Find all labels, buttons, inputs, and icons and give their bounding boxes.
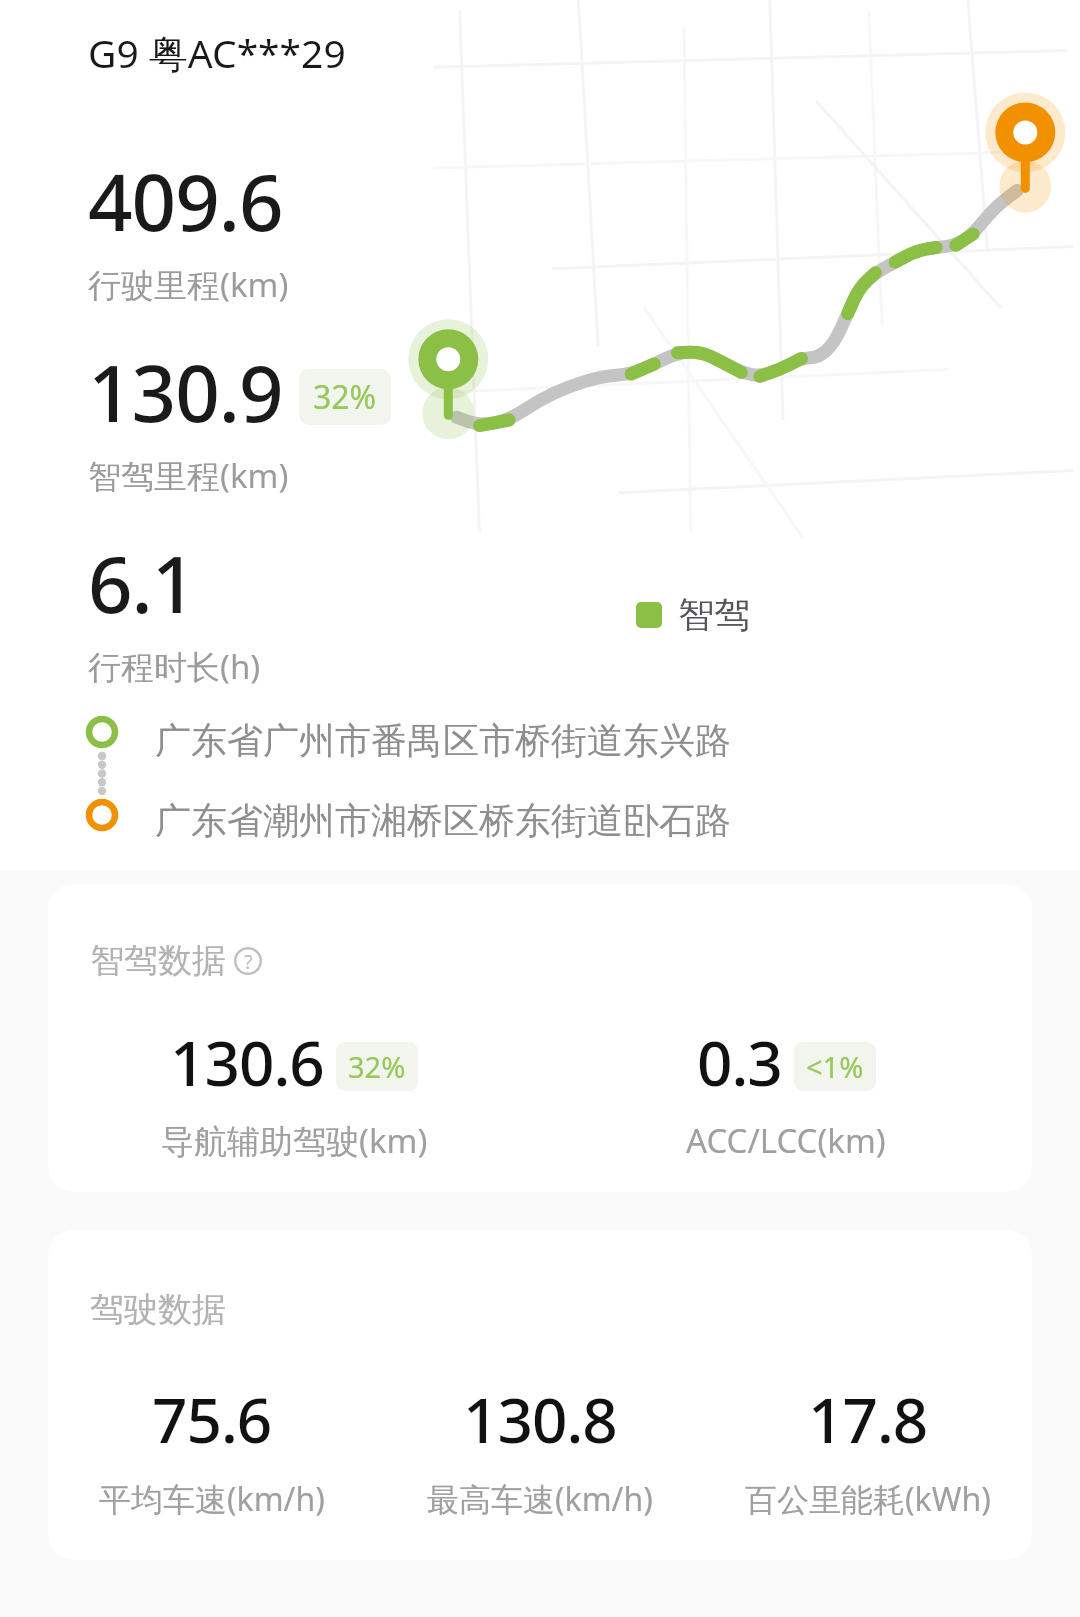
button[interactable]: 驾驶数据: [48, 1230, 1032, 1560]
staticText: 130.6: [170, 1020, 324, 1104]
staticText: 0.3: [697, 1020, 782, 1104]
staticText: 75.6: [152, 1377, 272, 1461]
staticText: 行程时长(h): [88, 644, 261, 689]
staticText: 智驾: [678, 592, 750, 637]
button[interactable]: 说明: [232, 945, 264, 977]
staticText: 广东省广州市番禺区市桥街道东兴路: [155, 718, 731, 763]
staticText: G9 粤AC***29: [88, 26, 346, 79]
staticText: 17.8: [808, 1377, 928, 1461]
staticText: 智驾里程(km): [88, 453, 289, 498]
staticText: 130.8: [463, 1377, 617, 1461]
staticText: 百公里能耗(kWh): [745, 1477, 991, 1521]
staticText: ACC/LCC(km): [686, 1118, 886, 1163]
staticText: 平均车速(km/h): [99, 1477, 325, 1521]
staticText: 32%: [313, 375, 377, 419]
staticText: 行驶里程(km): [88, 262, 289, 307]
staticText: 130.9: [88, 339, 283, 445]
staticText: 智驾数据: [90, 939, 226, 982]
button[interactable]: 智驾数据: [48, 884, 1032, 1192]
staticText: <1%: [806, 1047, 864, 1086]
staticText: ?: [244, 948, 253, 975]
staticText: 广东省潮州市湘桥区桥东街道卧石路: [155, 798, 731, 843]
staticText: 驾驶数据: [90, 1288, 226, 1331]
staticText: 导航辅助驾驶(km): [161, 1118, 428, 1163]
staticText: 409.6: [88, 148, 283, 254]
staticText: 6.1: [88, 530, 196, 636]
staticText: 32%: [348, 1047, 406, 1086]
staticText: 最高车速(km/h): [427, 1477, 653, 1521]
